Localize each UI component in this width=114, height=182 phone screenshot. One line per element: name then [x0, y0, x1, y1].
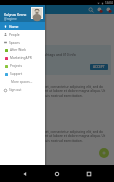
button[interactable]: Marketing&PR	[0, 54, 45, 62]
staticText: ACCEPT	[93, 65, 105, 69]
staticText: Home	[9, 24, 19, 28]
staticText: Choose people in the hashtags and $10 in…	[6, 52, 76, 57]
button[interactable]: After Work	[0, 46, 45, 54]
button[interactable]: Spaces	[0, 38, 45, 46]
staticText: Spaces	[9, 40, 20, 44]
button[interactable]: ACCEPT	[90, 64, 108, 70]
button[interactable]: Lorem ipsum dolor sit amet, consectetur …	[3, 77, 111, 117]
staticText: Kalynas Krenx	[4, 12, 27, 17]
staticText: After Work	[10, 48, 27, 52]
button[interactable]: Home	[50, 167, 64, 181]
button[interactable]: Sign out	[0, 86, 45, 94]
button[interactable]: More spaces...	[0, 78, 45, 86]
staticText: Support	[10, 72, 23, 76]
button[interactable]: People	[95, 5, 104, 14]
button[interactable]: Home	[0, 22, 45, 30]
button[interactable]: Back	[18, 167, 32, 181]
staticText: More spaces...	[11, 80, 33, 84]
button[interactable]: Choose people in the hashtags and $10 in…	[3, 45, 111, 75]
staticText: Marketing&PR	[10, 56, 32, 60]
button[interactable]: People	[0, 30, 45, 38]
button[interactable]: Profile photo	[32, 8, 42, 18]
staticText: 14:04	[105, 1, 113, 5]
staticText: Lorem ipsum dolor sit amet, consectetur …	[6, 84, 108, 97]
button[interactable]: Projects	[0, 62, 45, 70]
staticText: People	[9, 32, 20, 36]
staticText: Lorem ipsum dolor sit amet, consectetur …	[6, 129, 108, 142]
button[interactable]: Recents	[82, 167, 96, 181]
staticText: Projects	[10, 64, 22, 68]
button[interactable]: Compose	[99, 148, 109, 158]
staticText: Sign out	[9, 88, 22, 92]
button[interactable]: Support	[0, 70, 45, 78]
button[interactable]: Lorem ipsum dolor sit amet, consectetur …	[3, 120, 111, 160]
staticText: @regime	[4, 17, 17, 21]
button[interactable]: Search	[86, 5, 95, 14]
button[interactable]: Notifications	[104, 5, 113, 14]
